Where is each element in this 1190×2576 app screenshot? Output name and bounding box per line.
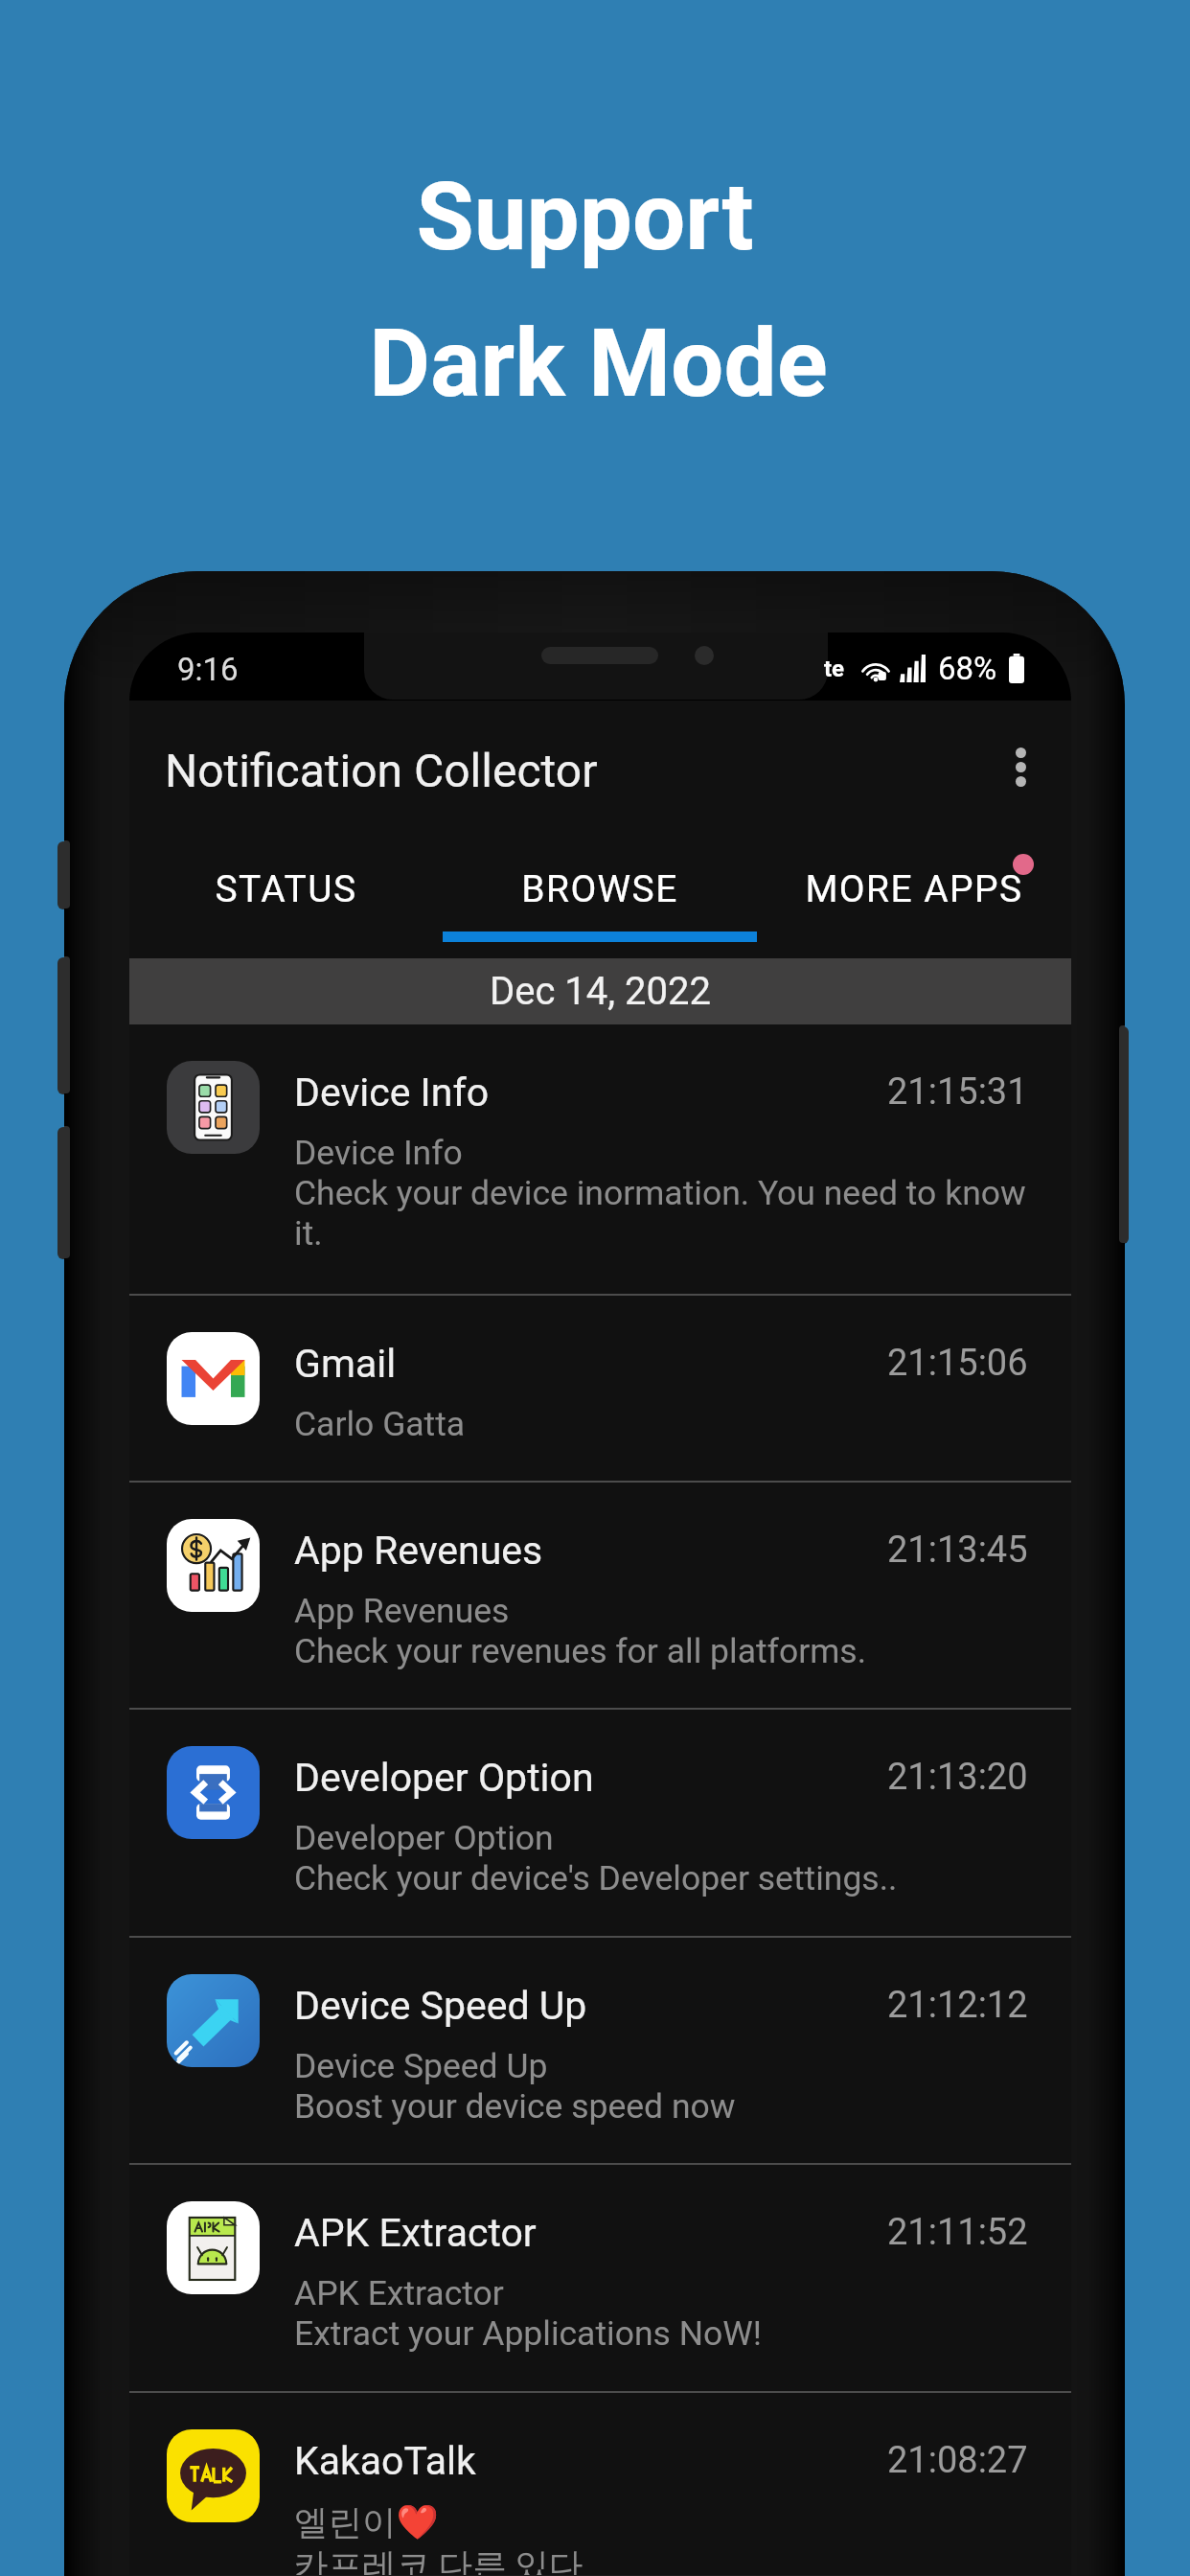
staticText: Dec 14, 2022 xyxy=(490,969,711,1014)
staticText: Gmail xyxy=(294,1341,397,1387)
staticText: 9:16 xyxy=(177,651,239,688)
staticText: Notification Collector xyxy=(165,744,598,797)
staticText: 21:13:45 xyxy=(887,1529,1028,1572)
staticText: 21:08:27 xyxy=(887,2439,1028,2482)
staticText: STATUS xyxy=(215,867,357,911)
staticText: App Revenues xyxy=(294,1591,510,1631)
button[interactable]: Device Speed Up xyxy=(129,1938,1071,2163)
staticText: Device Speed Up xyxy=(294,1983,587,2029)
button[interactable]: KakaoTalk xyxy=(129,2393,1071,2575)
staticText: Developer Option xyxy=(294,1818,554,1858)
button[interactable]: App Revenues xyxy=(129,1483,1071,1708)
staticText: 21:11:52 xyxy=(887,2211,1028,2254)
staticText: 카프레코 다른 있다 xyxy=(294,2544,584,2575)
staticText: BROWSE xyxy=(521,867,678,911)
staticText: Support xyxy=(416,162,754,272)
staticText: Extract your Applications NoW! xyxy=(294,2313,762,2354)
staticText: 21:15:31 xyxy=(887,1070,1028,1114)
staticText: MORE APPS xyxy=(805,867,1023,911)
staticText: Device Info xyxy=(294,1133,463,1173)
button[interactable]: Developer Option xyxy=(129,1710,1071,1936)
staticText: Boost your device speed now xyxy=(294,2086,736,2127)
staticText: APK Extractor xyxy=(294,2210,537,2256)
staticText: Dark Mode xyxy=(369,309,828,419)
staticText: Check your device's Developer settings.. xyxy=(294,1858,898,1898)
button[interactable]: Device Info xyxy=(129,1024,1071,1294)
button[interactable]: APK Extractor xyxy=(129,2165,1071,2391)
staticText: Developer Option xyxy=(294,1755,594,1801)
staticText: Check your device inormation. You need t… xyxy=(294,1173,1026,1213)
staticText: Check your revenues for all platforms. xyxy=(294,1631,866,1671)
button[interactable]: Gmail xyxy=(129,1296,1071,1481)
staticText: 21:12:12 xyxy=(887,1984,1028,2027)
staticText: APK Extractor xyxy=(294,2273,504,2313)
button[interactable]: MORE APPS xyxy=(757,825,1071,958)
staticText: App Revenues xyxy=(294,1528,543,1574)
staticText: Device Info xyxy=(294,1069,490,1115)
staticText: Carlo Gatta xyxy=(294,1404,466,1444)
button[interactable]: Notification Collector xyxy=(129,701,1071,825)
staticText: 21:13:20 xyxy=(887,1756,1028,1799)
button[interactable]: BROWSE xyxy=(443,825,757,958)
staticText: 21:15:06 xyxy=(887,1342,1028,1385)
staticText: te xyxy=(824,655,845,682)
staticText: KakaoTalk xyxy=(294,2438,476,2484)
staticText: Device Speed Up xyxy=(294,2046,548,2086)
button[interactable]: STATUS xyxy=(129,825,443,958)
staticText: 엘린이❤️ xyxy=(294,2501,439,2544)
button[interactable]: More options xyxy=(986,732,1055,801)
staticText: it. xyxy=(294,1213,323,1253)
staticText: 68% xyxy=(938,650,997,687)
